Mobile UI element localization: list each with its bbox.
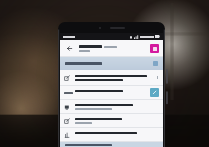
button[interactable]: Attach bbox=[60, 86, 163, 99]
other: Item action bbox=[64, 118, 70, 124]
button[interactable]: Item action bbox=[60, 70, 163, 85]
button[interactable]: Item action bbox=[60, 114, 163, 127]
other: Expand section bbox=[153, 61, 158, 66]
button[interactable]: Attach bbox=[150, 88, 159, 97]
button[interactable]: Expand section bbox=[60, 57, 163, 70]
button[interactable]: Item action bbox=[60, 100, 163, 113]
button[interactable]: Back bbox=[64, 43, 74, 53]
other: Item action bbox=[64, 104, 70, 110]
button[interactable] bbox=[60, 142, 163, 147]
other: Item action bbox=[64, 132, 70, 138]
button[interactable]: Item action bbox=[60, 128, 163, 141]
other: Item action bbox=[64, 75, 70, 81]
button[interactable]: Account bbox=[150, 44, 159, 53]
